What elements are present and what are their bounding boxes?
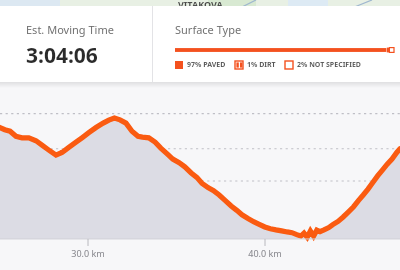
- staticText: 1% DIRT: [247, 60, 276, 70]
- staticText: 30.0 km: [68, 247, 108, 259]
- staticText: 2% NOT SPECIFIED: [297, 60, 361, 70]
- staticText: Surface Type: [175, 22, 242, 37]
- button[interactable]: Est. Moving Time: [0, 6, 152, 82]
- staticText: 3:04:06: [26, 41, 98, 70]
- staticText: VITAKOVA: [178, 0, 223, 6]
- staticText: 40.0 km: [245, 247, 285, 259]
- button[interactable]: Surface Type: [153, 6, 400, 82]
- staticText: Est. Moving Time: [26, 22, 114, 37]
- other: Elevation profile chart: [0, 82, 400, 270]
- staticText: 97% PAVED: [187, 60, 226, 70]
